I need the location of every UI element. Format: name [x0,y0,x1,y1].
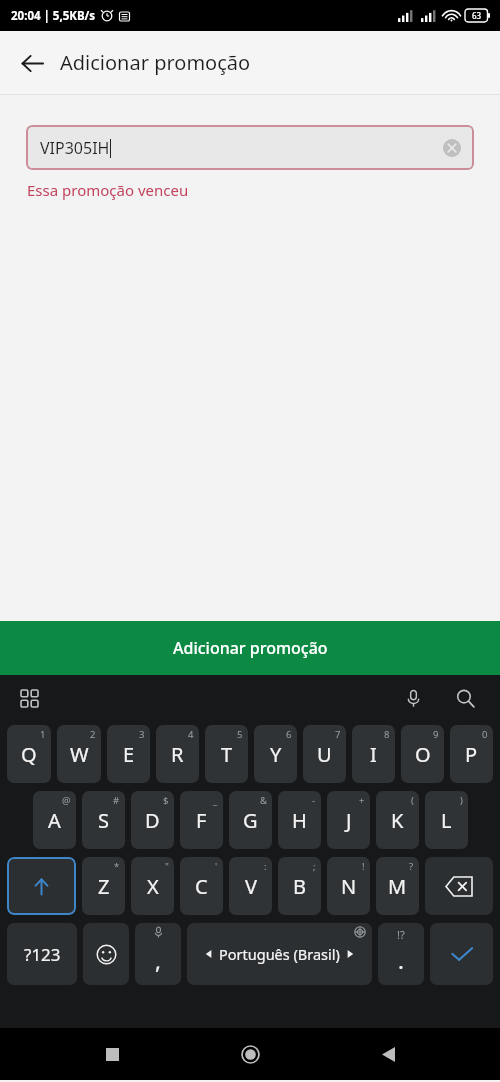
staticText: L [441,807,452,834]
button[interactable]: Adicionar promoção [0,621,500,675]
button[interactable]: Backspace [425,857,493,915]
staticText: U [317,741,332,768]
button[interactable]: E [107,725,150,783]
staticText: F [196,807,207,834]
staticText: 20:04 | 5,5KB/s [11,8,96,24]
button[interactable]: G [229,791,272,849]
staticText: # [113,794,120,807]
button[interactable]: Shift [7,857,76,915]
button[interactable]: L [425,791,468,849]
button[interactable]: D [131,791,174,849]
staticText: X [147,873,159,900]
staticText: C [195,873,208,900]
button[interactable]: S [82,791,125,849]
button[interactable]: Q [7,725,51,783]
button[interactable]: M [376,857,419,915]
button[interactable]: V [229,857,272,915]
button[interactable]: N [327,857,370,915]
button[interactable]: U [303,725,346,783]
staticText: 3 [139,728,145,741]
button[interactable]: Back [362,1028,414,1080]
staticText: O [415,741,431,768]
button[interactable]: Home [224,1028,276,1080]
button[interactable]: Back [8,39,56,87]
staticText: , [155,945,161,975]
button[interactable]: I [352,725,395,783]
staticText: Adicionar promoção [60,49,251,76]
staticText: 63 [472,10,482,21]
button[interactable]: Space [187,923,372,985]
button[interactable]: O [401,725,444,783]
staticText: @ [62,794,71,807]
staticText: ! [362,860,365,873]
staticText: N [341,873,357,900]
staticText: 4 [188,728,194,741]
staticText: T [221,741,233,768]
staticText: _ [213,794,218,807]
staticText: Q [21,741,37,768]
button[interactable]: T [205,725,248,783]
staticText: Z [98,873,110,900]
staticText: R [171,741,184,768]
staticText: Português (Brasil) [219,944,340,964]
staticText: S [98,807,109,834]
staticText: ; [313,860,316,873]
button[interactable]: A [33,791,76,849]
staticText: A [48,807,61,834]
button[interactable]: VIP305IH [26,125,474,170]
staticText: & [260,794,267,807]
staticText: $ [163,794,169,807]
button[interactable]: P [450,725,493,783]
button[interactable]: Z [82,857,125,915]
staticText: " [165,860,169,873]
button[interactable]: C [180,857,223,915]
button[interactable]: Period [378,923,424,985]
button[interactable]: K [376,791,419,849]
button[interactable]: F [180,791,223,849]
button[interactable]: W [57,725,101,783]
staticText: V [245,873,257,900]
staticText: VIP305IH [40,137,110,159]
staticText: ? [409,860,414,873]
button[interactable]: Emoji [83,923,129,985]
staticText: !? [397,927,405,942]
staticText: 9 [433,728,439,741]
staticText: ( [411,794,414,807]
button[interactable]: Enter [430,923,493,985]
staticText: 6 [286,728,292,741]
staticText: . [398,945,404,975]
staticText: 7 [335,728,341,741]
staticText: E [123,741,135,768]
button[interactable]: Clear [439,135,465,161]
staticText: M [388,873,407,900]
staticText: W [70,741,89,768]
button[interactable]: Recent apps [86,1028,138,1080]
button[interactable]: Search [448,681,482,715]
staticText: 8 [384,728,390,741]
staticText: Y [270,741,282,768]
button[interactable]: H [278,791,321,849]
staticText: * [114,860,120,873]
button[interactable]: Y [254,725,297,783]
staticText: I [370,741,377,768]
button[interactable]: J [327,791,370,849]
staticText: 2 [90,728,96,741]
staticText: 0 [482,728,488,741]
staticText: - [312,794,316,807]
button[interactable]: Voice input [396,681,430,715]
button[interactable]: B [278,857,321,915]
button[interactable]: Comma [135,923,181,985]
button[interactable]: R [156,725,199,783]
staticText: ' [215,860,218,873]
staticText: : [264,860,267,873]
staticText: H [292,807,307,834]
staticText: 1 [40,728,46,741]
button[interactable]: X [131,857,174,915]
staticText: K [391,807,404,834]
button[interactable]: ?123 [7,923,77,985]
staticText: J [346,807,352,834]
staticText: ) [460,794,463,807]
staticText: ?123 [24,943,61,966]
button[interactable]: Clipboard [12,681,46,715]
staticText: Adicionar promoção [173,637,328,659]
